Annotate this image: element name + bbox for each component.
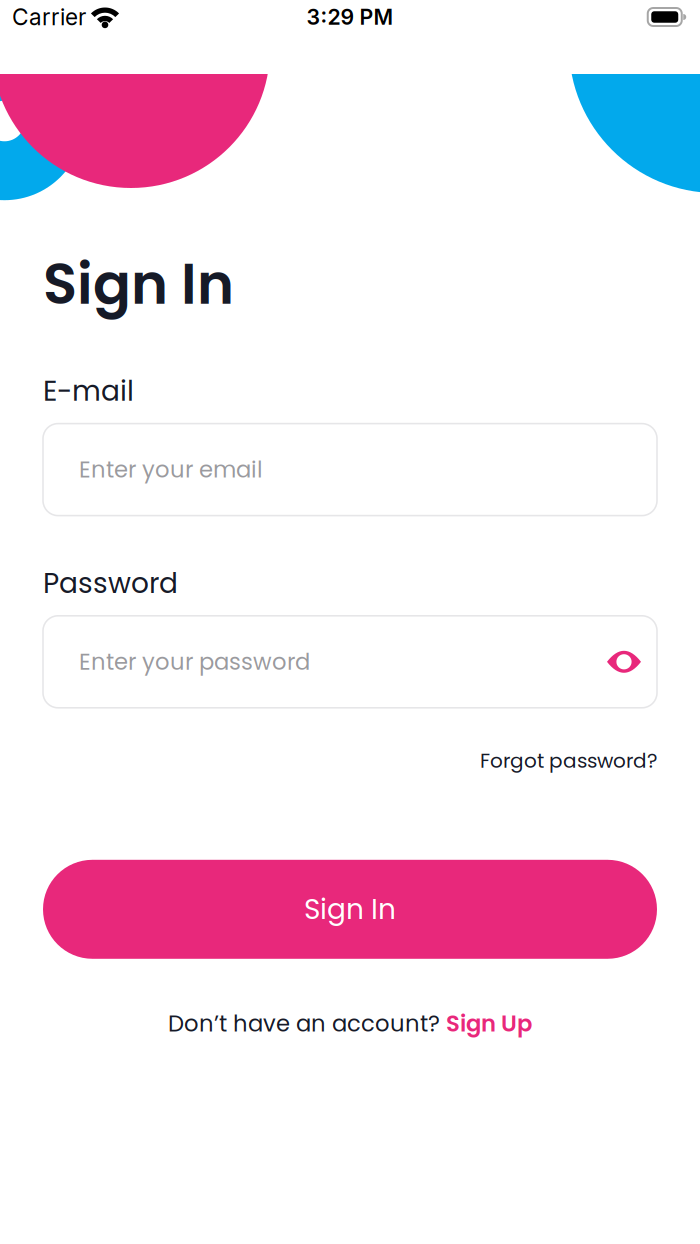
staticText: Sign In — [43, 245, 234, 323]
staticText: Sign Up — [446, 1008, 532, 1039]
staticText: Enter your password — [79, 646, 310, 678]
staticText: 3:29 PM — [306, 4, 393, 30]
button[interactable]: Forgot password? — [480, 747, 657, 775]
button[interactable]: Sign Up — [446, 1008, 532, 1039]
staticText: Enter your email — [79, 454, 263, 485]
button[interactable]: Sign In — [43, 860, 657, 959]
staticText: Sign In — [304, 890, 396, 929]
staticText: Password — [43, 564, 178, 603]
staticText: Carrier — [12, 3, 86, 31]
staticText: Forgot password? — [480, 747, 657, 775]
staticText: Don’t have an account? — [168, 1008, 446, 1039]
staticText: E-mail — [43, 371, 134, 411]
button[interactable]: Show password — [599, 637, 649, 687]
